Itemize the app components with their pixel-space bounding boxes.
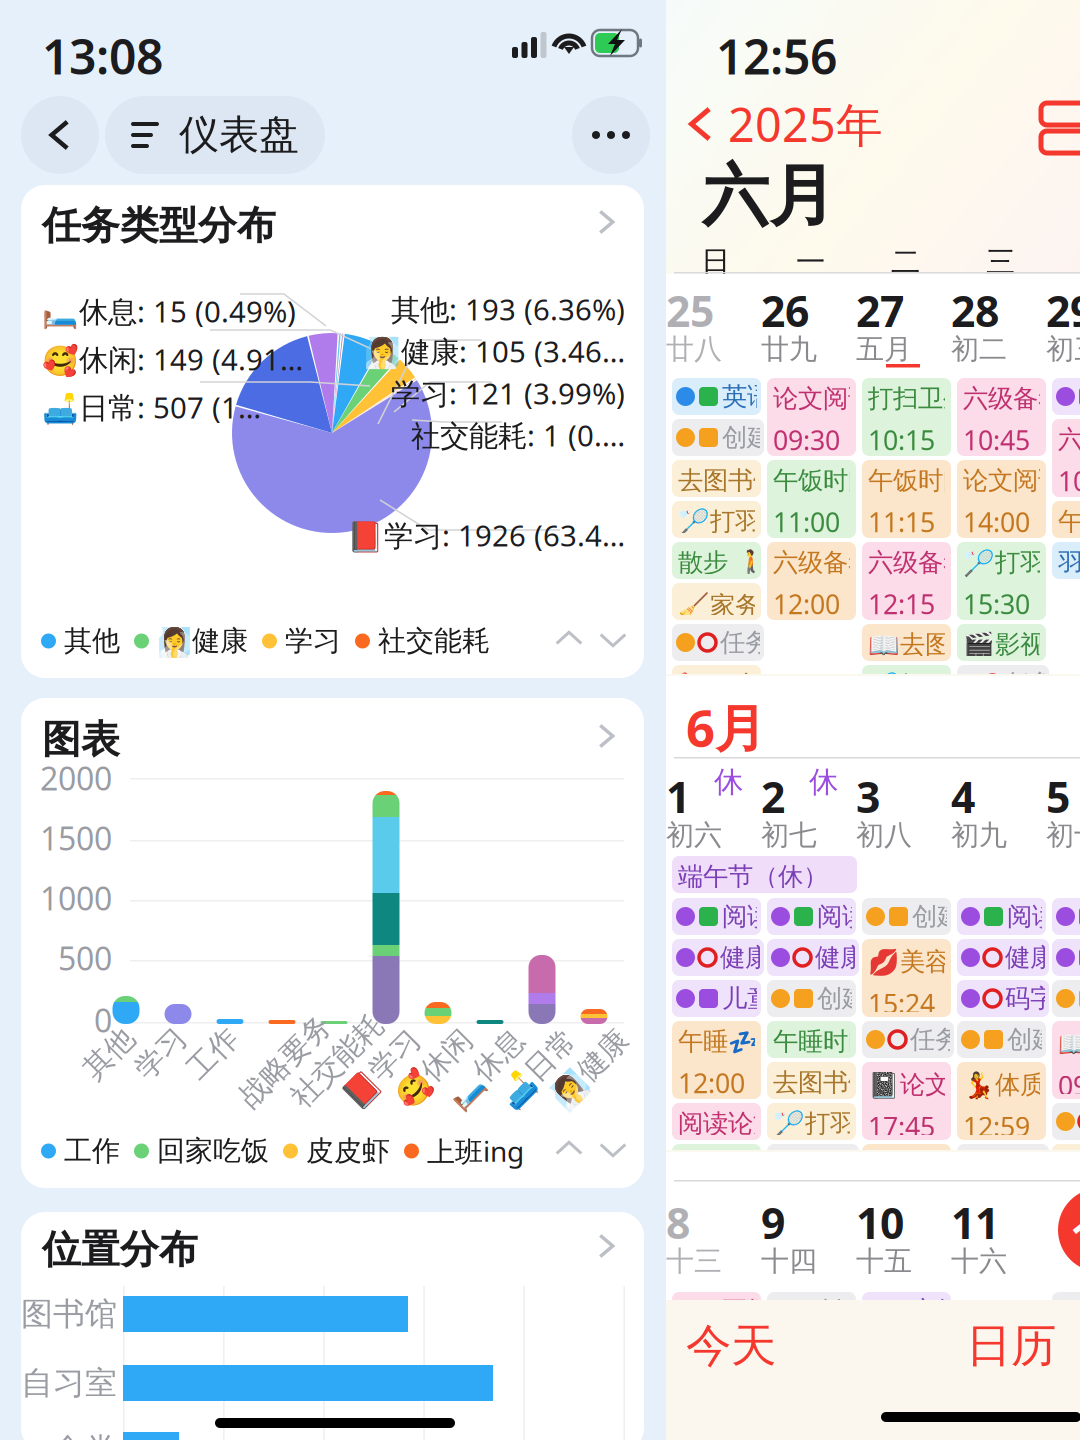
button[interactable]: 健康 bbox=[672, 939, 764, 976]
button[interactable]: 端午节（休） bbox=[672, 856, 857, 893]
button[interactable]: 论文阅读 bbox=[767, 1185, 856, 1222]
button[interactable]: Back bbox=[21, 96, 99, 174]
button[interactable]: 11 十六 bbox=[951, 1190, 1046, 1286]
button[interactable]: 📖5小 bbox=[1052, 1021, 1080, 1099]
button[interactable]: 2025年 bbox=[684, 96, 934, 152]
button[interactable]: 今天 bbox=[686, 1320, 806, 1372]
button[interactable]: Reminder bbox=[1052, 980, 1080, 1017]
button[interactable]: 🧹家务 1 bbox=[672, 583, 761, 620]
button[interactable]: ⭕任务进 bbox=[862, 1185, 951, 1222]
staticText: 13:08 bbox=[42, 24, 163, 88]
button[interactable]: 5 初十 bbox=[1046, 764, 1080, 860]
button[interactable]: Collapse chart legend bbox=[555, 1135, 583, 1163]
button[interactable]: 英语 bbox=[672, 378, 761, 415]
button[interactable]: ✏️码字 bbox=[672, 665, 761, 702]
button[interactable]: 创建每 bbox=[672, 419, 764, 456]
button[interactable]: 1 初六 bbox=[666, 764, 761, 860]
button[interactable]: 🏸打羽毛 bbox=[862, 665, 951, 702]
button[interactable]: 六级备考 bbox=[957, 1185, 1046, 1222]
button[interactable]: 🏸打羽毛 bbox=[767, 1103, 856, 1140]
button[interactable]: 任务 bbox=[672, 706, 764, 743]
button[interactable]: Expand chart legend bbox=[599, 1135, 627, 1163]
button[interactable]: 午饭 bbox=[1052, 501, 1080, 538]
button[interactable]: 9 十四 bbox=[761, 1190, 856, 1286]
button[interactable]: 六级备考 bbox=[862, 1144, 951, 1181]
button[interactable]: 26 廿九 bbox=[761, 278, 856, 374]
button[interactable]: 六级备考 bbox=[862, 542, 951, 620]
button[interactable]: 码字 bbox=[957, 980, 1049, 1017]
button[interactable]: 论文阅读 bbox=[957, 460, 1046, 538]
button[interactable]: 去图书馆 bbox=[767, 1062, 856, 1099]
button[interactable]: 任务 bbox=[957, 665, 1049, 702]
button[interactable]: 散步 🚶 bbox=[672, 542, 761, 579]
staticText: 09:30 bbox=[773, 422, 840, 457]
button[interactable]: 日历 bbox=[966, 1320, 1080, 1372]
staticText: 🏸打羽毛球 bbox=[963, 547, 1080, 578]
staticText: 三 bbox=[986, 244, 1015, 280]
button[interactable]: 阅读 bbox=[672, 898, 761, 935]
button[interactable]: 去图书馆 bbox=[672, 460, 761, 497]
button[interactable]: 健康 bbox=[767, 939, 859, 976]
button[interactable]: 六级 bbox=[1052, 419, 1080, 497]
button[interactable]: Reminder bbox=[1052, 1292, 1080, 1329]
button[interactable]: 4 初九 bbox=[951, 764, 1046, 860]
button[interactable]: 2 初七 bbox=[761, 764, 856, 860]
button[interactable]: Reminder bbox=[1052, 1103, 1080, 1140]
staticText: 六级备考 bbox=[868, 547, 968, 578]
button[interactable]: Open task type distribution bbox=[594, 210, 618, 234]
button[interactable]: Expand bbox=[599, 625, 627, 653]
button[interactable]: 六级备考 bbox=[957, 378, 1046, 456]
button[interactable]: 午饭时间 bbox=[767, 460, 856, 538]
button[interactable]: 🎬影视综 bbox=[957, 624, 1046, 661]
button[interactable]: 仪表盘 bbox=[105, 96, 325, 174]
button[interactable]: 任务 bbox=[672, 624, 764, 661]
button[interactable]: 任务 bbox=[862, 1021, 954, 1058]
button[interactable]: 🧹 bbox=[1052, 1144, 1080, 1181]
button[interactable]: Collapse bbox=[555, 625, 583, 653]
button[interactable]: 羽毛 bbox=[1052, 542, 1080, 579]
button[interactable]: 任务 bbox=[957, 1144, 1049, 1181]
button[interactable]: 10 十五 bbox=[856, 1190, 951, 1286]
button[interactable]: 28 初二 bbox=[951, 278, 1046, 374]
button[interactable]: Open location distribution bbox=[594, 1234, 618, 1258]
button[interactable]: 8 十三 bbox=[666, 1190, 761, 1286]
button[interactable]: 🏸羽毛球 bbox=[672, 1144, 761, 1181]
staticText: 初八 bbox=[856, 818, 912, 852]
button[interactable]: Reminder bbox=[1052, 378, 1080, 415]
button[interactable]: Reminder bbox=[1052, 939, 1080, 976]
button[interactable]: 五级 bbox=[672, 1292, 761, 1329]
button[interactable]: 25 廿八 bbox=[666, 278, 761, 374]
button[interactable]: More bbox=[572, 96, 650, 174]
button[interactable]: 💋美容护理 2… bbox=[862, 939, 951, 1017]
staticText: 学习 bbox=[285, 624, 341, 658]
button[interactable]: 🧹家务 1 bbox=[672, 1185, 761, 1222]
button[interactable]: 🏸打羽毛 bbox=[672, 501, 761, 538]
button[interactable]: 阅读 bbox=[767, 1144, 859, 1181]
button[interactable]: 健康 bbox=[957, 939, 1049, 976]
button[interactable]: 27 五月 bbox=[856, 278, 951, 374]
button[interactable]: Open chart bbox=[594, 724, 618, 748]
button[interactable]: 📖去图书 bbox=[862, 624, 951, 661]
button[interactable]: 儿童节 bbox=[672, 980, 761, 1017]
button[interactable]: 创建每 bbox=[862, 898, 951, 935]
button[interactable]: 3 初八 bbox=[856, 764, 951, 860]
button[interactable]: 阅读论文 bbox=[672, 1103, 761, 1140]
button[interactable]: 打扫卫生 bbox=[862, 378, 951, 456]
button[interactable]: 阅读 bbox=[957, 898, 1046, 935]
button[interactable]: 午睡💤 bbox=[672, 1021, 761, 1099]
button[interactable]: 📓论文阅读… bbox=[862, 1062, 951, 1140]
button[interactable]: 六级 bbox=[862, 1292, 951, 1329]
button[interactable]: 29 初三 bbox=[1046, 278, 1080, 374]
button[interactable]: 🏸打羽毛球 bbox=[957, 542, 1046, 620]
button[interactable]: 💃体质调理 39分钟 bbox=[957, 1062, 1046, 1140]
button[interactable]: 六级备考 bbox=[767, 542, 856, 620]
button[interactable]: 创建每 bbox=[957, 1021, 1046, 1058]
button[interactable]: 论文阅读 bbox=[767, 378, 856, 456]
button[interactable]: 创建每 bbox=[767, 1292, 856, 1329]
button[interactable]: 午睡时间 bbox=[767, 1021, 856, 1058]
button[interactable]: List view bbox=[1038, 100, 1080, 156]
button[interactable]: 创建每 bbox=[767, 980, 856, 1017]
button[interactable]: 午饭时间 bbox=[862, 460, 951, 538]
button[interactable]: Reminder bbox=[1052, 898, 1080, 935]
button[interactable]: 阅读 bbox=[767, 898, 856, 935]
